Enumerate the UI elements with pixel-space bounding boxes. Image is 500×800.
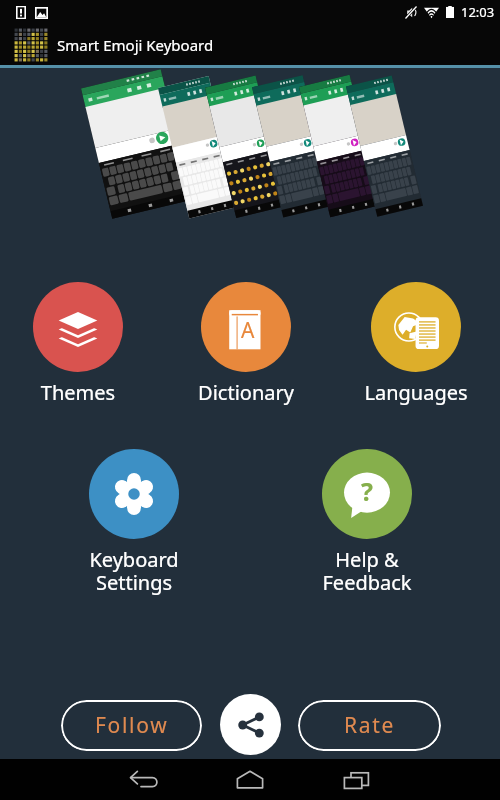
staticText: Languages	[336, 379, 496, 406]
staticText: ?	[361, 474, 373, 508]
button[interactable]: Languages	[336, 282, 496, 406]
staticText: 12:03	[461, 3, 495, 21]
staticText: Help & Feedback	[287, 546, 447, 596]
staticText: Dictionary	[166, 379, 326, 406]
staticText: Keyboard Settings	[54, 546, 214, 596]
button[interactable]: Home	[228, 759, 272, 800]
button[interactable]: Share	[220, 694, 281, 755]
button[interactable]: A	[166, 282, 326, 406]
button[interactable]: Follow	[61, 700, 202, 751]
button[interactable]: Themes	[0, 282, 158, 406]
staticText: Themes	[0, 379, 158, 406]
staticText: Follow	[95, 711, 169, 740]
button[interactable]: Keyboard Settings	[54, 449, 214, 596]
staticText: A	[241, 316, 255, 345]
button[interactable]: ?	[287, 449, 447, 596]
button[interactable]: Back	[122, 759, 166, 800]
staticText: Smart Emoji Keyboard	[57, 35, 214, 55]
button[interactable]: Rate	[298, 700, 441, 751]
staticText: Rate	[344, 711, 396, 740]
button[interactable]: Recents	[335, 759, 379, 800]
